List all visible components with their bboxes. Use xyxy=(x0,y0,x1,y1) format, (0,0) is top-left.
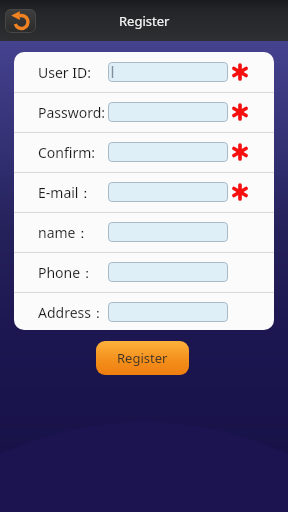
staticText: name： xyxy=(38,223,90,242)
staticText: E-mail： xyxy=(38,183,93,202)
button[interactable] xyxy=(108,62,228,82)
staticText: Register xyxy=(119,12,170,30)
staticText: Address： xyxy=(38,303,105,322)
staticText: Phone： xyxy=(38,263,95,282)
button[interactable] xyxy=(108,102,228,122)
staticText: Password: xyxy=(38,103,106,122)
button[interactable]: Register xyxy=(96,341,189,375)
button[interactable] xyxy=(108,302,228,322)
staticText: User ID: xyxy=(38,63,91,82)
button[interactable] xyxy=(108,222,228,242)
staticText: Register xyxy=(117,349,168,367)
button[interactable] xyxy=(108,142,228,162)
staticText: Confirm: xyxy=(38,143,96,162)
button[interactable] xyxy=(5,9,36,33)
button[interactable] xyxy=(108,182,228,202)
button[interactable] xyxy=(108,262,228,282)
